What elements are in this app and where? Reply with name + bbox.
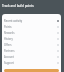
button[interactable]: Points bbox=[4, 24, 59, 30]
button[interactable]: Partners bbox=[4, 48, 59, 54]
staticText: Rewards bbox=[4, 31, 15, 35]
button[interactable]: Support bbox=[4, 60, 59, 66]
button[interactable]: History bbox=[4, 36, 59, 42]
staticText: Support bbox=[4, 61, 14, 65]
staticText: Points bbox=[4, 25, 12, 29]
button[interactable]: Rewards bbox=[4, 30, 59, 36]
staticText: Offers bbox=[4, 43, 12, 47]
button[interactable]: Offers bbox=[4, 42, 59, 48]
staticText: Recent activity bbox=[4, 19, 23, 23]
staticText: History bbox=[4, 37, 13, 41]
button[interactable]: Account bbox=[4, 54, 59, 60]
staticText: Partners bbox=[4, 49, 15, 53]
staticText: Track and build points bbox=[2, 4, 34, 8]
button[interactable] bbox=[4, 69, 59, 72]
staticText: Account bbox=[4, 55, 14, 59]
